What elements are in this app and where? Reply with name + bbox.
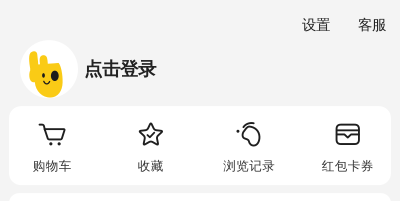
staticText: 红包卡券 [322,158,374,174]
staticText: 设置 [302,16,330,34]
button[interactable]: 购物车 [3,109,101,182]
button[interactable]: 浏览记录 [200,109,298,182]
staticText: 点击登录 [84,58,156,81]
button[interactable]: 设置 [296,12,336,38]
staticText: 浏览记录 [223,158,275,174]
button[interactable]: 点击登录 [0,40,400,98]
button[interactable]: 收藏 [101,109,200,182]
staticText: 客服 [358,16,386,34]
button[interactable]: 客服 [352,12,392,38]
staticText: 购物车 [33,158,72,174]
button[interactable]: 红包卡券 [298,109,397,182]
staticText: 收藏 [138,158,164,174]
